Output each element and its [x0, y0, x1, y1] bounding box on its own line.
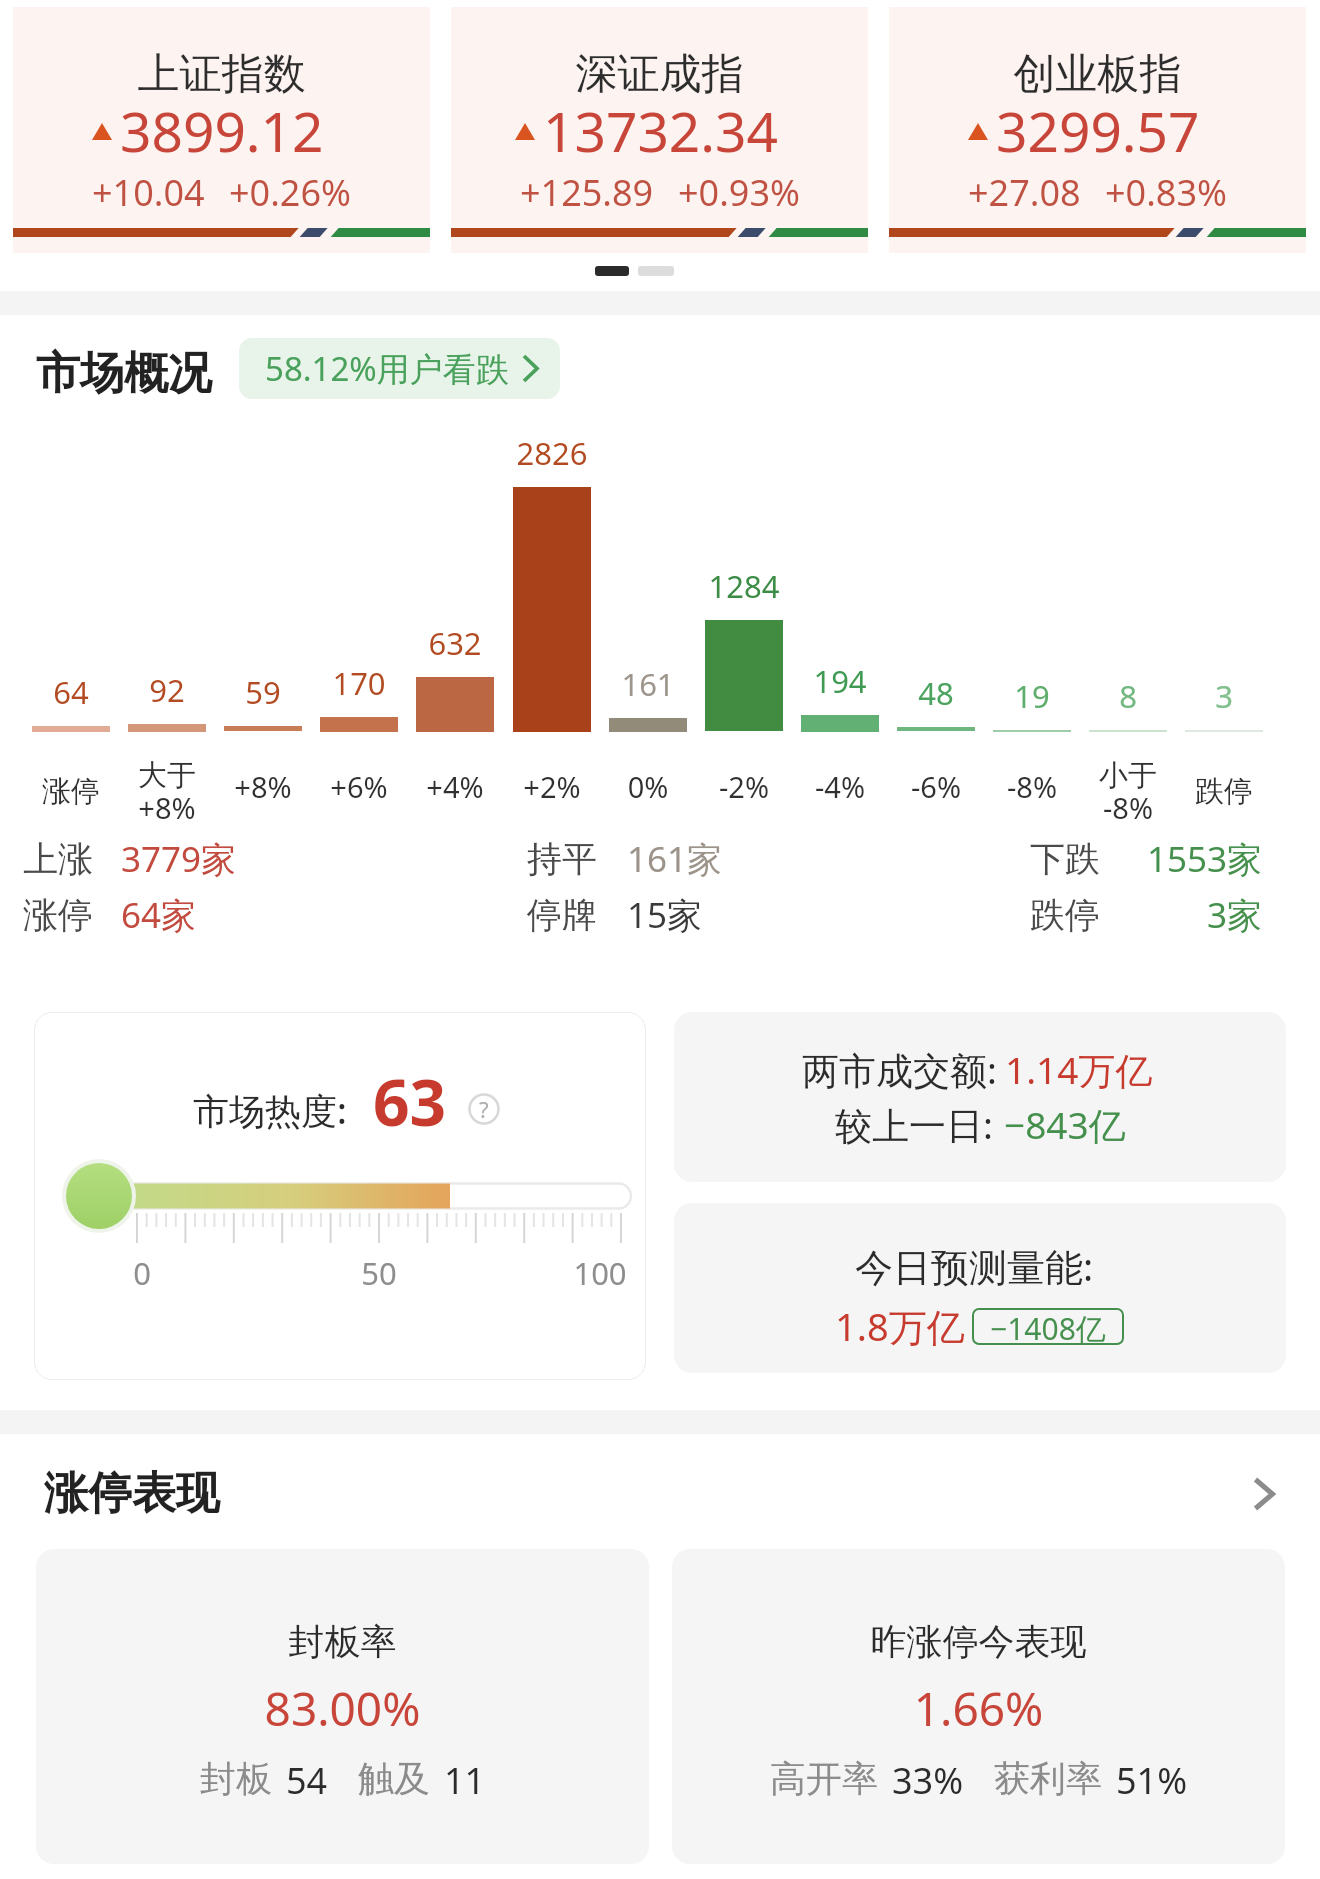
staticText: +0.93% — [678, 168, 800, 217]
staticText: 1.14万亿 — [1005, 1044, 1153, 1095]
staticText: 3779家 — [121, 835, 237, 883]
button[interactable]: 深证成指 — [451, 7, 868, 253]
button[interactable]: 市场热度说明 — [468, 1093, 500, 1125]
button[interactable]: 两市成交额: — [674, 1012, 1286, 1182]
staticText: 92 — [119, 669, 215, 711]
staticText: 33% — [892, 1756, 964, 1805]
button[interactable]: 市场热度: — [34, 1012, 646, 1380]
staticText: 3299.57 — [996, 93, 1200, 168]
staticText: 3家 — [1062, 891, 1262, 939]
staticText: 194 — [792, 660, 888, 702]
other: 查看更多涨停表现 — [1253, 1477, 1275, 1511]
staticText: 1284 — [696, 565, 792, 607]
staticText: 83.00% — [36, 1677, 649, 1740]
staticText: 0% — [600, 767, 696, 806]
staticText: −843亿 — [1004, 1099, 1126, 1150]
staticText: 涨停 — [23, 893, 93, 937]
staticText: 3899.12 — [120, 93, 324, 168]
staticText: 54 — [286, 1756, 328, 1805]
staticText: 较上一日: — [835, 1099, 993, 1150]
button[interactable]: 今日预测量能: — [674, 1203, 1286, 1373]
staticText: 封板率 — [36, 1619, 649, 1664]
staticText: 昨涨停今表现 — [672, 1619, 1285, 1664]
staticText: 161家 — [627, 835, 723, 883]
staticText: 跌停 — [1176, 773, 1272, 810]
staticText: 2826 — [504, 432, 600, 474]
staticText: +27.08 — [968, 168, 1081, 217]
button[interactable]: 第一页 — [595, 266, 629, 276]
staticText: 下跌 — [1030, 837, 1100, 881]
button[interactable]: 上证指数 — [13, 7, 430, 253]
button[interactable]: 创业板指 — [889, 7, 1306, 253]
staticText: 获利率 — [994, 1756, 1102, 1801]
staticText: 上证指数 — [13, 48, 430, 101]
staticText: 100 — [540, 1252, 660, 1294]
staticText: 11 — [444, 1756, 486, 1805]
staticText: 8 — [1080, 675, 1176, 717]
staticText: 19 — [984, 675, 1080, 717]
staticText: -2% — [696, 767, 792, 806]
staticText: 持平 — [527, 837, 597, 881]
staticText: 13732.34 — [543, 93, 778, 168]
staticText: +0.26% — [229, 168, 351, 217]
staticText: 63 — [373, 1058, 447, 1145]
staticText: +8% — [215, 767, 311, 806]
staticText: 51% — [1116, 1756, 1188, 1805]
staticText: 两市成交额: — [802, 1044, 997, 1095]
staticText: 涨停表现 — [44, 1466, 220, 1521]
staticText: 58.12%用户看跌 — [265, 346, 509, 391]
button[interactable]: 涨停表现 — [0, 1452, 1320, 1534]
staticText: +6% — [311, 767, 407, 806]
staticText: 48 — [888, 672, 984, 714]
staticText: +4% — [407, 767, 503, 806]
staticText: 小于 -8% — [1080, 757, 1176, 828]
staticText: −1408亿 — [990, 1308, 1106, 1345]
staticText: 市场概况 — [36, 346, 212, 401]
staticText: 市场热度: — [193, 1086, 347, 1135]
staticText: 632 — [407, 622, 503, 664]
staticText: 64 — [23, 671, 119, 713]
staticText: 封板 — [200, 1756, 272, 1801]
button[interactable]: 昨涨停今表现 — [672, 1549, 1285, 1864]
staticText: 15家 — [627, 891, 703, 939]
staticText: 触及 — [358, 1756, 430, 1801]
staticText: 170 — [311, 662, 407, 704]
staticText: +2% — [504, 767, 600, 806]
staticText: 1.8万亿 — [835, 1300, 965, 1352]
staticText: 停牌 — [527, 893, 597, 937]
staticText: 今日预测量能: — [855, 1240, 1094, 1292]
staticText: +10.04 — [92, 168, 205, 217]
button[interactable]: 封板率 — [36, 1549, 649, 1864]
staticText: 50 — [319, 1252, 439, 1294]
staticText: 创业板指 — [889, 48, 1306, 101]
staticText: 161 — [600, 663, 696, 705]
staticText: 1553家 — [1062, 835, 1262, 883]
staticText: +125.89 — [520, 168, 654, 217]
button[interactable]: 58.12%用户看跌 — [239, 338, 560, 399]
staticText: 涨停 — [23, 773, 119, 810]
staticText: 3 — [1176, 675, 1272, 717]
button[interactable]: 第二页 — [638, 266, 674, 276]
staticText: 跌停 — [1030, 893, 1100, 937]
staticText: ? — [479, 1094, 489, 1124]
staticText: +0.83% — [1105, 168, 1227, 217]
staticText: 0 — [82, 1252, 202, 1294]
staticText: 1.66% — [672, 1677, 1285, 1740]
staticText: 64家 — [121, 891, 197, 939]
staticText: 上涨 — [23, 837, 93, 881]
staticText: 59 — [215, 671, 311, 713]
staticText: 大于 +8% — [119, 757, 215, 828]
staticText: 深证成指 — [451, 48, 868, 101]
staticText: -6% — [888, 767, 984, 806]
staticText: 高开率 — [770, 1756, 878, 1801]
staticText: -4% — [792, 767, 888, 806]
staticText: -8% — [984, 767, 1080, 806]
